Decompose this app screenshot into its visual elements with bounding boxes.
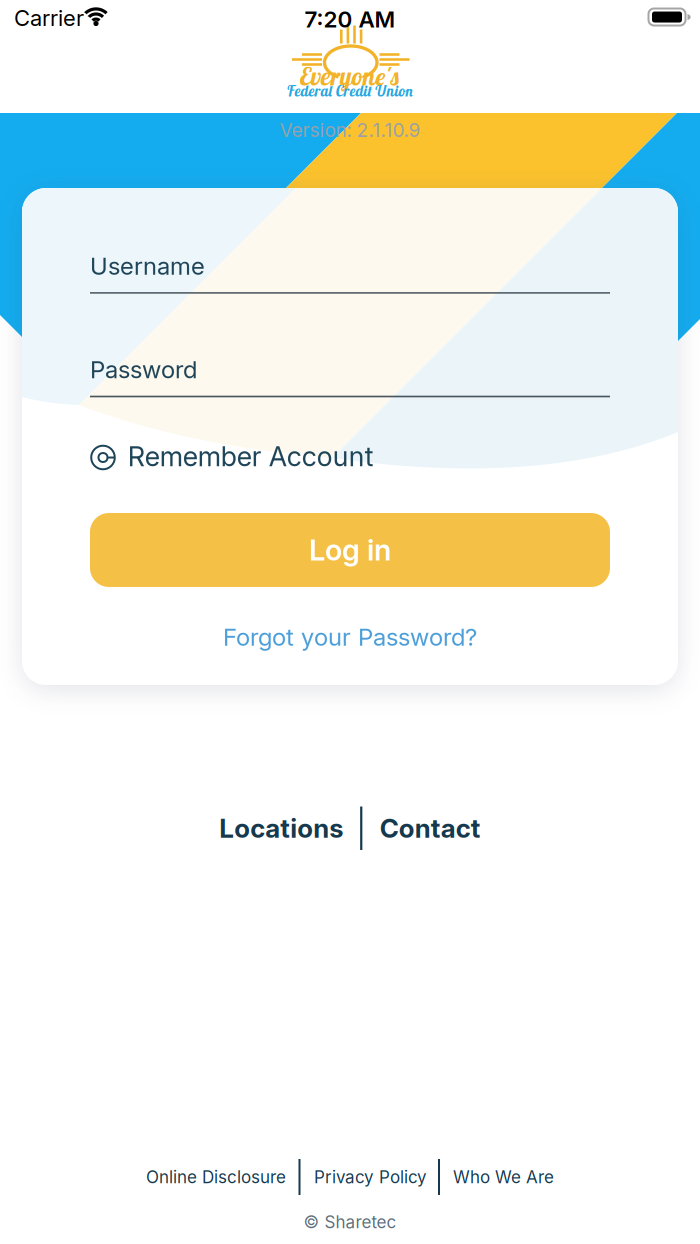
button[interactable]: Remember Account bbox=[88, 438, 394, 476]
button[interactable]: Username bbox=[90, 251, 610, 295]
staticText: Log in bbox=[309, 532, 391, 568]
staticText: Who We Are bbox=[453, 1167, 554, 1187]
staticText: Forgot your Password? bbox=[223, 622, 477, 651]
staticText: Version: 2.1.10.9 bbox=[279, 118, 420, 141]
staticText: © Sharetec bbox=[303, 1212, 396, 1232]
staticText: 7:20 AM bbox=[304, 6, 395, 33]
button[interactable]: Forgot your Password? bbox=[223, 622, 477, 651]
button[interactable]: Password bbox=[90, 355, 610, 399]
button[interactable]: Online Disclosure bbox=[146, 1167, 286, 1187]
staticText: Username bbox=[90, 251, 205, 280]
button[interactable]: Log in bbox=[90, 513, 610, 587]
button[interactable]: Who We Are bbox=[453, 1167, 554, 1187]
staticText: Password bbox=[90, 355, 197, 384]
staticText: Federal Credit Union bbox=[286, 81, 413, 100]
staticText: Contact bbox=[380, 812, 481, 844]
button[interactable]: Privacy Policy bbox=[314, 1167, 427, 1187]
staticText: Carrier bbox=[14, 5, 84, 31]
staticText: Everyone's bbox=[299, 60, 400, 92]
staticText: Remember Account bbox=[128, 440, 374, 473]
button[interactable]: Contact bbox=[380, 812, 481, 844]
staticText: Privacy Policy bbox=[314, 1167, 427, 1187]
staticText: Locations bbox=[219, 812, 343, 844]
button[interactable]: Locations bbox=[219, 812, 343, 844]
staticText: Online Disclosure bbox=[146, 1167, 286, 1187]
